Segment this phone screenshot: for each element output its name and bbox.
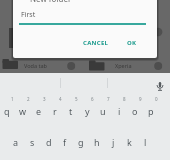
- staticText: OK: [127, 39, 137, 47]
- button[interactable]: First: [19, 8, 152, 26]
- staticText: w: [19, 105, 27, 117]
- staticText: q: [4, 105, 10, 117]
- button[interactable]: d: [41, 135, 57, 148]
- button[interactable]: j: [105, 135, 121, 148]
- button[interactable]: CANCEL: [81, 38, 110, 48]
- staticText: f: [63, 136, 67, 148]
- staticText: j: [112, 136, 115, 148]
- button[interactable]: r: [47, 104, 63, 117]
- button[interactable]: o: [127, 104, 143, 117]
- staticText: i: [118, 105, 121, 117]
- button[interactable]: t: [63, 104, 79, 117]
- button[interactable]: k: [121, 135, 137, 148]
- button[interactable]: h: [89, 135, 105, 148]
- staticText: l: [144, 136, 147, 148]
- staticText: y: [85, 105, 90, 117]
- staticText: New folder: [30, 0, 72, 4]
- button[interactable]: u: [95, 104, 111, 117]
- button[interactable]: OK: [124, 38, 139, 48]
- button[interactable]: [153, 80, 167, 94]
- staticText: s: [30, 136, 35, 148]
- button[interactable]: s: [24, 135, 40, 148]
- staticText: 0: [155, 96, 158, 102]
- staticText: 1: [11, 96, 14, 102]
- button[interactable]: e: [31, 104, 47, 117]
- staticText: 4: [59, 96, 62, 102]
- staticText: 3: [43, 96, 46, 102]
- staticText: h: [94, 136, 100, 148]
- staticText: 5: [75, 96, 78, 102]
- staticText: 2: [27, 96, 30, 102]
- button[interactable]: a: [8, 135, 24, 148]
- staticText: k: [127, 136, 132, 148]
- button[interactable]: f: [57, 135, 73, 148]
- staticText: t: [69, 105, 73, 117]
- staticText: a: [13, 136, 19, 148]
- staticText: Xperia: [115, 62, 132, 69]
- button[interactable]: l: [137, 135, 153, 148]
- button[interactable]: y: [79, 104, 95, 117]
- staticText: 7: [107, 96, 110, 102]
- button[interactable]: i: [111, 104, 127, 117]
- staticText: First: [21, 10, 36, 20]
- staticText: 6: [91, 96, 94, 102]
- staticText: g: [78, 136, 84, 148]
- staticText: d: [46, 136, 52, 148]
- staticText: o: [132, 105, 138, 117]
- staticText: p: [148, 105, 154, 117]
- staticText: Voda tab: [24, 62, 47, 69]
- button[interactable]: p: [143, 104, 159, 117]
- button[interactable]: q: [0, 104, 15, 117]
- button[interactable]: g: [73, 135, 89, 148]
- staticText: e: [36, 105, 42, 117]
- staticText: r: [53, 105, 57, 117]
- staticText: u: [100, 105, 106, 117]
- staticText: 8: [123, 96, 126, 102]
- staticText: 9: [139, 96, 142, 102]
- button[interactable]: w: [15, 104, 31, 117]
- staticText: CANCEL: [83, 39, 109, 47]
